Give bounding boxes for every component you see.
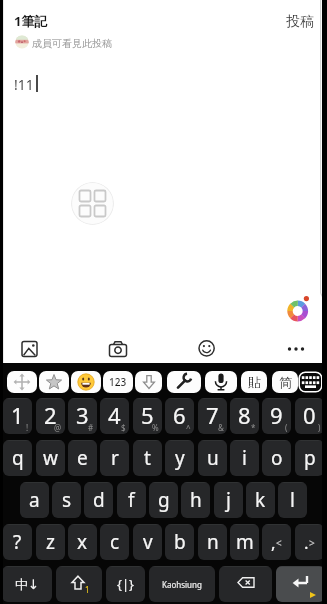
button[interactable]: Kaohsiung (149, 566, 215, 602)
button[interactable] (285, 292, 312, 319)
button[interactable] (11, 334, 48, 364)
button[interactable] (167, 371, 201, 393)
button[interactable]: 9 (262, 398, 291, 434)
button[interactable]: v (133, 524, 162, 560)
button[interactable] (276, 566, 325, 602)
button[interactable] (99, 334, 136, 364)
staticText: 4 (108, 400, 121, 430)
staticText: 9 (270, 400, 283, 430)
button[interactable]: h (181, 482, 210, 518)
button[interactable] (7, 371, 37, 393)
button[interactable]: z (36, 524, 65, 560)
staticText: i (242, 445, 247, 471)
button[interactable]: g (149, 482, 178, 518)
button[interactable] (278, 334, 315, 364)
button[interactable]: 中↓ (2, 566, 52, 602)
button[interactable]: , (262, 524, 291, 560)
staticText: h (190, 487, 202, 513)
button[interactable]: . (295, 524, 324, 560)
button[interactable]: 貼 (241, 371, 267, 393)
staticText: # (88, 422, 94, 433)
button[interactable]: ? (3, 524, 32, 560)
staticText: u (207, 445, 219, 471)
button[interactable]: l (278, 482, 307, 518)
button[interactable]: 2 (36, 398, 65, 434)
button[interactable] (205, 371, 237, 393)
staticText: g (158, 487, 170, 513)
staticText: d (93, 487, 105, 513)
staticText: 8 (238, 400, 251, 430)
button[interactable]: e (68, 440, 97, 476)
button[interactable]: 简 (272, 371, 298, 393)
button[interactable]: b (165, 524, 194, 560)
staticText: 7 (206, 400, 219, 430)
button[interactable] (39, 371, 69, 393)
button[interactable]: k (246, 482, 275, 518)
staticText: !11 (14, 75, 34, 94)
button[interactable]: u (198, 440, 227, 476)
button[interactable]: m (230, 524, 259, 560)
staticText: & (218, 422, 224, 433)
button[interactable]: 1 (3, 398, 32, 434)
staticText: * (251, 422, 256, 433)
staticText: r (111, 445, 119, 471)
staticText: ^ (186, 422, 191, 433)
button[interactable]: 123 (103, 371, 133, 393)
staticText: w (43, 445, 58, 471)
button[interactable]: 1 (56, 566, 102, 602)
button[interactable]: d (84, 482, 113, 518)
button[interactable] (71, 371, 101, 393)
staticText: > (309, 536, 315, 550)
button[interactable]: p (295, 440, 324, 476)
button[interactable]: f (117, 482, 146, 518)
staticText: 123 (109, 375, 127, 389)
staticText: % (152, 422, 159, 433)
staticText: 1 (85, 584, 90, 595)
button[interactable]: {|} (106, 566, 145, 602)
staticText: c (110, 529, 120, 555)
staticText: 5 (141, 400, 154, 430)
button[interactable]: o (262, 440, 291, 476)
button[interactable] (188, 333, 225, 363)
staticText: 中↓ (15, 576, 39, 592)
button[interactable]: n (198, 524, 227, 560)
staticText: o (271, 445, 283, 471)
button[interactable]: 0 (295, 398, 324, 434)
button[interactable]: 4 (100, 398, 129, 434)
staticText: 6 (173, 400, 186, 430)
button[interactable]: c (100, 524, 129, 560)
button[interactable] (298, 371, 323, 393)
button[interactable]: 8 (230, 398, 259, 434)
staticText: {|} (117, 575, 135, 593)
button[interactable]: x (68, 524, 97, 560)
staticText: 3 (76, 400, 89, 430)
staticText: 1筆記 (14, 12, 48, 30)
staticText: , (271, 531, 276, 554)
button[interactable]: s (52, 482, 81, 518)
staticText: 1 (11, 400, 24, 430)
button[interactable]: q (3, 440, 32, 476)
button[interactable] (135, 371, 162, 393)
staticText: f (128, 487, 135, 513)
button[interactable]: 7 (198, 398, 227, 434)
button[interactable]: 投稿 (278, 9, 322, 35)
staticText: 貼 (248, 374, 261, 390)
button[interactable]: y (165, 440, 194, 476)
staticText: 投稿 (286, 13, 314, 31)
button[interactable] (219, 566, 272, 602)
button[interactable]: a (20, 482, 49, 518)
staticText: ) (318, 422, 321, 433)
button[interactable]: 5 (133, 398, 162, 434)
staticText: t (144, 445, 151, 471)
button[interactable]: w (36, 440, 65, 476)
button[interactable]: 6 (165, 398, 194, 434)
button[interactable]: t (133, 440, 162, 476)
button[interactable]: j (214, 482, 243, 518)
staticText: j (226, 487, 231, 513)
staticText: p (304, 445, 316, 471)
button[interactable]: r (100, 440, 129, 476)
button[interactable] (71, 182, 114, 225)
button[interactable]: 3 (68, 398, 97, 434)
staticText: < (276, 536, 282, 550)
button[interactable]: i (230, 440, 259, 476)
